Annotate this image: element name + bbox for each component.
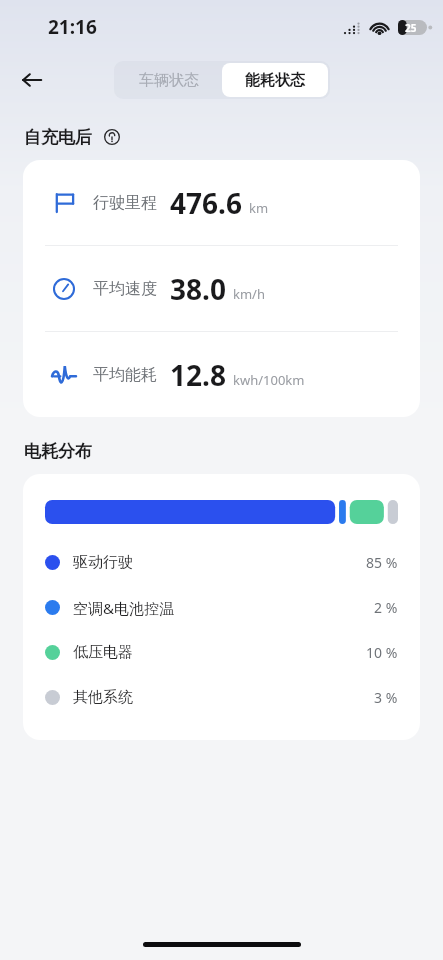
- staticText: 平均能耗: [93, 365, 157, 385]
- button[interactable]: 行驶里程: [23, 160, 420, 245]
- staticText: 476.6: [170, 184, 242, 222]
- staticText: 其他系统: [73, 688, 133, 707]
- button[interactable]: 能耗状态: [222, 63, 328, 97]
- staticText: 平均速度: [93, 279, 157, 299]
- button[interactable]: 低压电器: [23, 630, 420, 675]
- button[interactable]: Help: [101, 126, 123, 148]
- staticText: km/h: [233, 285, 265, 303]
- staticText: 38.0: [170, 270, 226, 308]
- staticText: 电耗分布: [24, 441, 92, 462]
- button[interactable]: 其他系统: [23, 675, 420, 720]
- staticText: 行驶里程: [93, 193, 157, 213]
- staticText: kwh/100km: [233, 371, 305, 389]
- button[interactable]: 驱动行驶: [23, 540, 420, 585]
- button[interactable]: 车辆状态: [116, 63, 222, 97]
- staticText: 12.8: [170, 356, 226, 394]
- staticText: 21:16: [48, 14, 97, 40]
- button[interactable]: 平均能耗: [23, 332, 420, 417]
- staticText: 25: [405, 21, 417, 35]
- staticText: 驱动行驶: [73, 553, 133, 572]
- staticText: 车辆状态: [139, 71, 199, 90]
- button[interactable]: 平均速度: [23, 246, 420, 331]
- button[interactable]: Back: [10, 58, 54, 102]
- staticText: 低压电器: [73, 643, 133, 662]
- staticText: 85 %: [366, 553, 398, 572]
- staticText: 2 %: [374, 598, 398, 617]
- staticText: 能耗状态: [245, 71, 305, 90]
- button[interactable]: 空调&电池控温: [23, 585, 420, 630]
- staticText: 10 %: [366, 643, 398, 662]
- staticText: 空调&电池控温: [73, 598, 174, 618]
- staticText: 自充电后: [24, 127, 92, 148]
- staticText: km: [249, 199, 269, 217]
- staticText: 3 %: [374, 688, 398, 707]
